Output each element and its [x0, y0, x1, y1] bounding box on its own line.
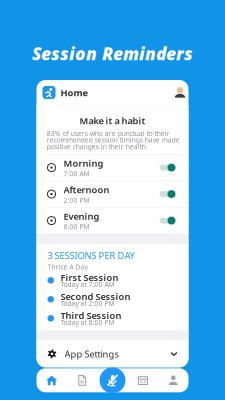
button[interactable]: Documents — [67, 368, 97, 392]
staticText: App Settings — [64, 348, 118, 360]
staticText: Today at 2:00 PM — [60, 299, 114, 308]
staticText: Afternoon — [63, 183, 109, 196]
staticText: Home — [60, 86, 88, 99]
staticText: Session Reminders — [32, 42, 193, 65]
button[interactable]: Morning — [36, 155, 188, 181]
staticText: Make it a habit — [79, 114, 145, 127]
staticText: 2:00 PM — [63, 196, 89, 205]
staticText: Today at 7:00 AM — [60, 280, 114, 289]
button[interactable]: Profile — [174, 87, 185, 98]
button[interactable]: Evening — [36, 208, 188, 234]
staticText: Thrice A Day — [47, 262, 87, 271]
staticText: Third Session — [60, 309, 121, 321]
button[interactable]: Calendar — [128, 368, 158, 392]
button[interactable]: App Settings — [36, 340, 188, 367]
staticText: 7:00 AM — [63, 169, 89, 178]
staticText: Evening — [63, 210, 99, 222]
staticText: Morning — [63, 157, 103, 169]
staticText: 3 SESSIONS PER DAY — [47, 249, 134, 261]
staticText: Second Session — [60, 290, 130, 302]
staticText: 83% of users who are punctual to their r… — [47, 129, 180, 151]
button[interactable]: Profile — [158, 368, 188, 392]
button[interactable]: Home — [36, 368, 67, 392]
staticText: 8:00 PM — [63, 222, 89, 231]
staticText: First Session — [60, 271, 118, 283]
staticText: Today at 8:00 PM — [60, 318, 114, 327]
button[interactable]: Afternoon — [36, 181, 188, 207]
button[interactable]: Mute microphone — [99, 367, 125, 393]
